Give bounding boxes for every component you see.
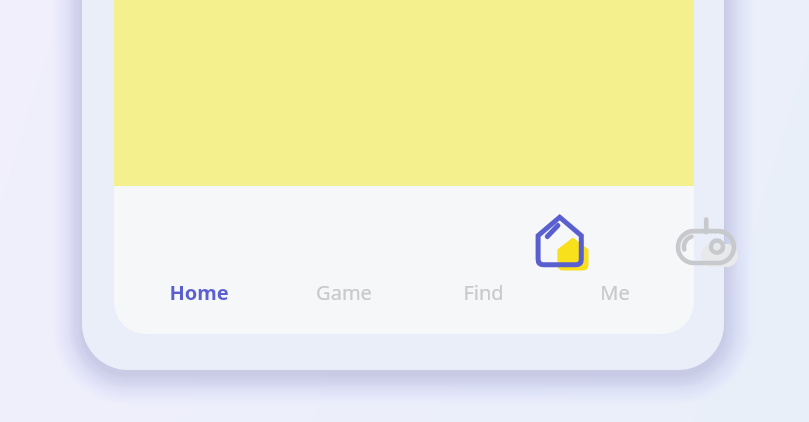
staticText: Game <box>316 279 372 306</box>
button[interactable]: Me <box>547 186 694 334</box>
button[interactable]: Home <box>114 186 268 334</box>
staticText: Home <box>169 279 229 306</box>
button[interactable]: Game <box>268 186 411 334</box>
button[interactable]: Find <box>412 186 548 334</box>
staticText: Find <box>463 279 504 306</box>
staticText: Me <box>600 279 630 306</box>
